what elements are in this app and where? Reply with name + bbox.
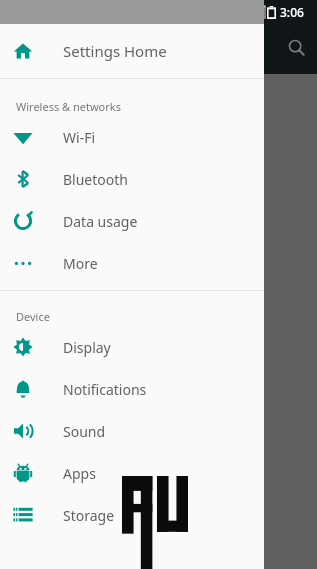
- staticText: More: [63, 254, 98, 273]
- button[interactable]: Bluetooth: [0, 158, 264, 200]
- button[interactable]: Data usage: [0, 200, 264, 242]
- staticText: Wi-Fi: [63, 128, 96, 147]
- staticText: Device: [16, 309, 50, 324]
- button[interactable]: Notifications: [0, 368, 264, 410]
- button[interactable]: Storage: [0, 494, 264, 536]
- staticText: Notifications: [63, 380, 147, 399]
- staticText: Display: [63, 338, 111, 357]
- button[interactable]: Apps: [0, 452, 264, 494]
- staticText: Apps: [63, 464, 96, 483]
- button[interactable]: Sound: [0, 410, 264, 452]
- staticText: Sound: [63, 422, 106, 441]
- button[interactable]: Display: [0, 326, 264, 368]
- staticText: Storage: [63, 506, 115, 525]
- button[interactable]: Wi-Fi: [0, 116, 264, 158]
- staticText: Data usage: [63, 212, 138, 231]
- staticText: Wireless & networks: [16, 99, 121, 114]
- staticText: Settings Home: [63, 41, 167, 61]
- staticText: Bluetooth: [63, 170, 128, 189]
- button[interactable]: More: [0, 242, 264, 284]
- button[interactable]: Settings Home: [0, 24, 264, 78]
- staticText: 3:06: [280, 4, 304, 20]
- button[interactable]: Search: [279, 30, 313, 64]
